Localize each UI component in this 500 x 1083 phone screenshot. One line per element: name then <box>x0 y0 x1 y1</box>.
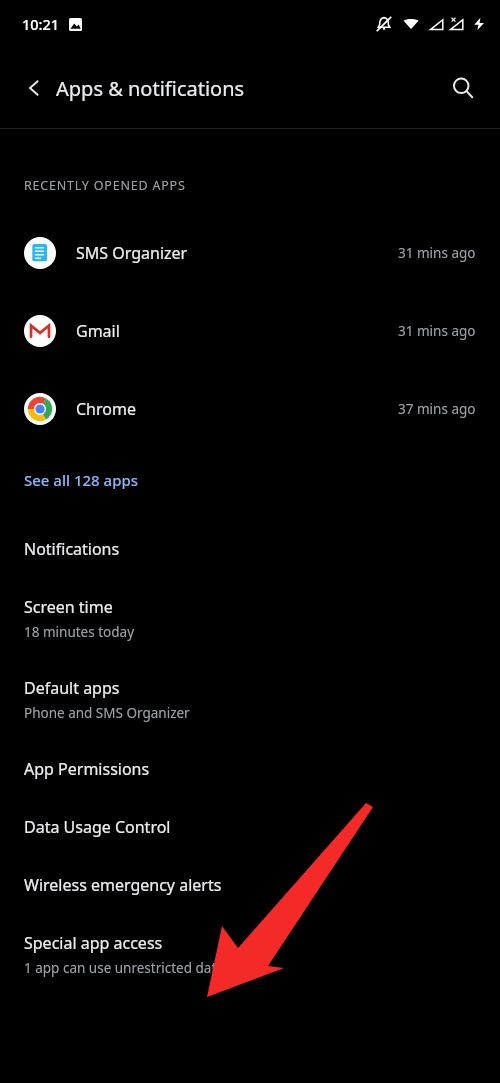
staticText: Data Usage Control <box>24 816 171 838</box>
button[interactable]: App Permissions <box>0 740 500 798</box>
button[interactable]: Gmail <box>0 292 500 370</box>
button[interactable]: Wireless emergency alerts <box>0 856 500 914</box>
button[interactable]: Chrome <box>0 370 500 448</box>
button[interactable]: Notifications <box>0 520 500 578</box>
staticText: 18 minutes today <box>24 623 135 641</box>
button[interactable]: Screen time <box>0 578 500 659</box>
staticText: 31 mins ago <box>398 322 476 340</box>
staticText: SMS Organizer <box>76 242 398 264</box>
staticText: Chrome <box>76 398 398 420</box>
button[interactable]: See all 128 apps <box>0 462 500 498</box>
staticText: See all 128 apps <box>24 470 139 490</box>
staticText: Phone and SMS Organizer <box>24 704 190 722</box>
button[interactable]: SMS Organizer <box>0 214 500 292</box>
staticText: 31 mins ago <box>398 244 476 262</box>
button[interactable]: Special app access <box>0 914 500 995</box>
button[interactable]: Back <box>18 72 50 104</box>
staticText: Notifications <box>24 538 120 560</box>
staticText: RECENTLY OPENED APPS <box>24 177 186 194</box>
staticText: Apps & notifications <box>56 75 245 102</box>
staticText: 1 app can use unrestricted data <box>24 959 224 977</box>
button[interactable]: Data Usage Control <box>0 798 500 856</box>
button[interactable]: Search <box>440 65 486 111</box>
staticText: Special app access <box>24 932 163 954</box>
staticText: Wireless emergency alerts <box>24 874 222 896</box>
staticText: 37 mins ago <box>398 400 476 418</box>
staticText: Gmail <box>76 320 398 342</box>
staticText: Default apps <box>24 677 120 699</box>
staticText: 10:21 <box>22 14 60 34</box>
button[interactable]: Default apps <box>0 659 500 740</box>
staticText: App Permissions <box>24 758 150 780</box>
staticText: Screen time <box>24 596 113 618</box>
